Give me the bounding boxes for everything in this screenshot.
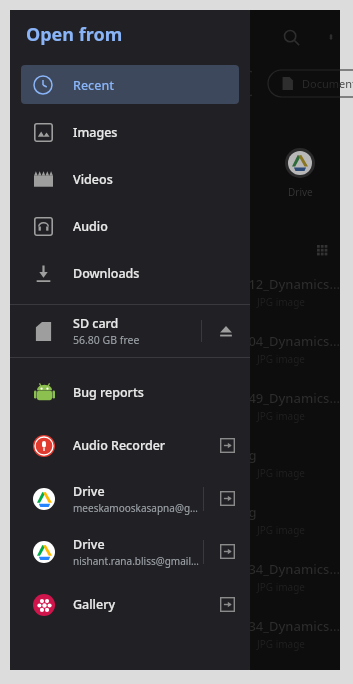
- button[interactable]: More options: [316, 22, 346, 52]
- staticText: JPG image: [257, 580, 305, 594]
- staticText: SD card: [73, 315, 119, 332]
- staticText: eg: [241, 446, 257, 464]
- staticText: JPG image: [257, 523, 305, 537]
- staticText: JPG image: [257, 466, 305, 480]
- staticText: Images: [73, 124, 118, 141]
- button[interactable]: Open Gallery in new window: [204, 578, 250, 631]
- button[interactable]: Audio: [21, 206, 239, 245]
- staticText: Downloads: [73, 265, 140, 282]
- button[interactable]: Document: [272, 70, 353, 97]
- staticText: JPG image: [257, 295, 305, 309]
- button[interactable]: Grid view: [310, 238, 336, 264]
- staticText: Drive: [288, 185, 313, 199]
- button[interactable]: Drive: [10, 472, 250, 525]
- button[interactable]: Open Drive in new window: [204, 472, 250, 525]
- staticText: 449_Dynamics...: [241, 389, 341, 407]
- button[interactable]: Bug reports: [10, 366, 250, 419]
- staticText: 56.80 GB free: [73, 333, 140, 347]
- staticText: 504_Dynamics...: [241, 332, 341, 350]
- staticText: JPG image: [257, 409, 305, 423]
- staticText: Audio Recorder: [73, 437, 166, 454]
- button[interactable]: Gallery: [10, 578, 250, 631]
- staticText: 512_Dynamics...: [241, 275, 341, 293]
- staticText: eg: [241, 503, 257, 521]
- staticText: Document: [302, 76, 353, 91]
- button[interactable]: Eject SD card: [202, 311, 250, 351]
- staticText: Drive: [73, 483, 105, 500]
- staticText: JPG image: [257, 352, 305, 366]
- staticText: 734_Dynamics...: [241, 617, 341, 635]
- staticText: Open from: [26, 22, 123, 47]
- button[interactable]: Images: [21, 112, 239, 151]
- staticText: Bug reports: [73, 384, 144, 401]
- button[interactable]: Open Drive in new window: [204, 525, 250, 578]
- staticText: meeskamooskasapna@gmai...: [73, 501, 199, 515]
- staticText: Drive: [73, 536, 105, 553]
- button[interactable]: Audio Recorder: [10, 419, 250, 472]
- button[interactable]: Recent: [21, 65, 239, 104]
- staticText: Recent: [73, 77, 115, 94]
- staticText: Audio: [73, 218, 108, 235]
- button[interactable]: Search: [276, 22, 306, 52]
- staticText: nishant.rana.bliss@gmail.com: [73, 554, 199, 568]
- button[interactable]: Videos: [21, 159, 239, 198]
- button[interactable]: Downloads: [21, 253, 239, 292]
- button[interactable]: Open Audio Recorder in new window: [204, 419, 250, 472]
- button[interactable]: Drive: [10, 525, 250, 578]
- button[interactable]: SD card: [10, 311, 250, 351]
- staticText: JPG image: [257, 637, 305, 651]
- staticText: Gallery: [73, 596, 116, 613]
- staticText: 834_Dynamics...: [241, 560, 341, 578]
- staticText: Videos: [73, 171, 113, 188]
